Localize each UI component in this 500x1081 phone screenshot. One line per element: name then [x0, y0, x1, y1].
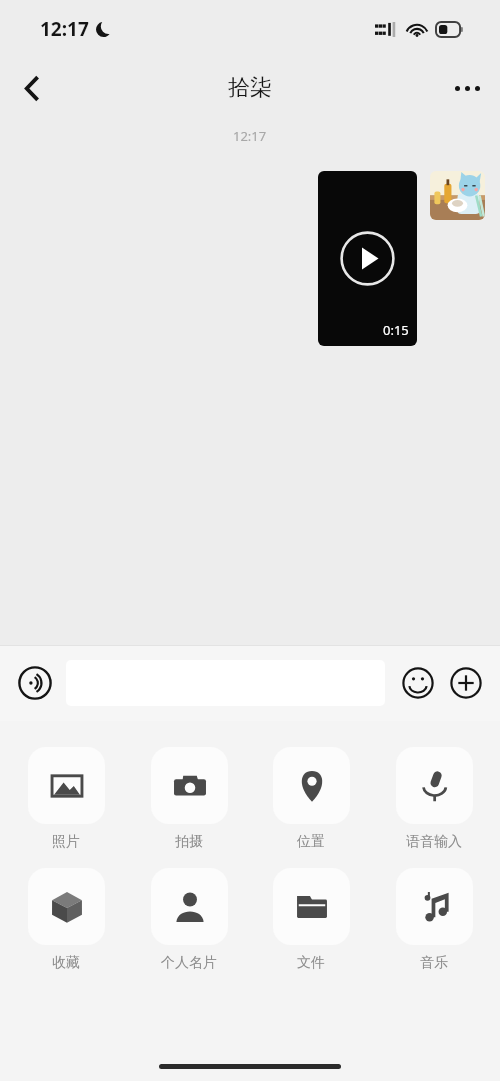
staticText: 音乐 — [420, 954, 448, 972]
staticText: 0:15 — [383, 321, 409, 339]
button[interactable]: Contact avatar — [430, 171, 485, 220]
button[interactable]: 位置 — [267, 747, 355, 851]
button[interactable]: 拍摄 — [145, 747, 233, 851]
staticText: 12:17 — [233, 127, 267, 145]
staticText: 拍摄 — [175, 833, 203, 851]
staticText: 拾柒 — [228, 74, 272, 102]
button[interactable]: 个人名片 — [145, 868, 233, 972]
staticText: 照片 — [52, 833, 80, 851]
staticText: 位置 — [297, 833, 325, 851]
button[interactable]: More options — [434, 58, 500, 118]
button[interactable]: 收藏 — [22, 868, 110, 972]
button[interactable]: Emoji — [398, 663, 438, 703]
button[interactable]: 照片 — [22, 747, 110, 851]
staticText: 语音输入 — [406, 833, 462, 851]
button[interactable]: More functions — [446, 663, 486, 703]
staticText: 12:17 — [40, 16, 89, 42]
button[interactable]: 文件 — [267, 868, 355, 972]
button[interactable]: Play video — [318, 171, 417, 346]
staticText: 个人名片 — [161, 954, 217, 972]
button[interactable]: 语音输入 — [390, 747, 478, 851]
staticText: 文件 — [297, 954, 325, 972]
button[interactable]: Back — [0, 58, 64, 118]
button[interactable]: Voice input — [14, 662, 56, 704]
staticText: 收藏 — [52, 954, 80, 972]
button[interactable]: 音乐 — [390, 868, 478, 972]
